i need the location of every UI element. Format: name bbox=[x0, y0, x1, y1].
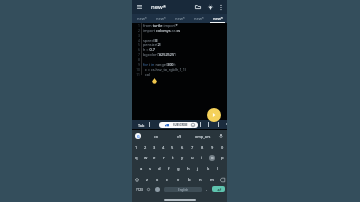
staticText: o bbox=[211, 155, 214, 161]
button[interactable]: 4 bbox=[159, 142, 168, 153]
button[interactable]: k bbox=[203, 163, 213, 174]
button[interactable]: f bbox=[164, 163, 173, 174]
button[interactable]: z bbox=[142, 174, 152, 185]
button[interactable]: 1 bbox=[132, 142, 141, 153]
staticText: new* bbox=[137, 16, 147, 21]
staticText: y bbox=[181, 155, 184, 161]
staticText: 0 bbox=[221, 145, 224, 150]
button[interactable]: 5 bbox=[168, 142, 177, 153]
staticText: SUBSCRIBE bbox=[173, 123, 188, 127]
button[interactable]: English bbox=[164, 187, 202, 192]
staticText: 4 bbox=[162, 145, 165, 150]
staticText: new* bbox=[194, 16, 204, 21]
staticText: Tab bbox=[138, 123, 145, 128]
staticText: 5 bbox=[131, 42, 140, 46]
staticText: b bbox=[188, 177, 191, 183]
button[interactable]: 6 bbox=[177, 142, 187, 153]
button[interactable]: Navigation menu bbox=[133, 0, 145, 14]
button[interactable]: Backspace bbox=[217, 174, 227, 185]
button[interactable]: s bbox=[146, 163, 155, 174]
button[interactable]: 2 bbox=[141, 142, 150, 153]
staticText: w bbox=[144, 155, 148, 161]
button[interactable]: v bbox=[173, 174, 184, 185]
button[interactable]: Open file bbox=[192, 0, 204, 14]
button[interactable]: l bbox=[213, 163, 223, 174]
staticText: i bbox=[201, 155, 203, 161]
button[interactable]: i bbox=[197, 152, 207, 163]
staticText: 3 bbox=[131, 33, 140, 37]
staticText: 1 bbox=[131, 23, 140, 27]
button[interactable]: 3 bbox=[150, 142, 159, 153]
staticText: m bbox=[210, 177, 214, 183]
button[interactable]: n bbox=[195, 174, 206, 185]
button[interactable]: Enter bbox=[212, 186, 225, 192]
button[interactable]: r bbox=[159, 152, 168, 163]
button[interactable]: Emoji bbox=[146, 187, 151, 192]
staticText: G bbox=[137, 134, 140, 139]
staticText: for i in range(300): bbox=[143, 62, 176, 67]
button[interactable]: t bbox=[168, 152, 177, 163]
button[interactable]: 8 bbox=[197, 142, 207, 153]
staticText: ?123 bbox=[136, 188, 143, 192]
button[interactable]: new* bbox=[132, 14, 151, 23]
button[interactable]: g bbox=[173, 163, 183, 174]
button[interactable]: 9 bbox=[207, 142, 217, 153]
button[interactable]: ?123 bbox=[133, 185, 145, 194]
staticText: from turtle import* bbox=[143, 23, 178, 28]
staticText: a bbox=[140, 166, 143, 172]
button[interactable]: Shift bbox=[132, 174, 142, 185]
staticText: h bbox=[187, 166, 190, 172]
button[interactable]: SUBSCRIBE bbox=[159, 122, 198, 128]
button[interactable]: o bbox=[207, 152, 217, 163]
staticText: 8 bbox=[131, 57, 140, 61]
button[interactable]: w bbox=[141, 152, 150, 163]
button[interactable]: h bbox=[183, 163, 193, 174]
button[interactable]: 0 bbox=[217, 142, 227, 153]
staticText: n bbox=[199, 177, 202, 183]
staticText: 6 bbox=[131, 47, 140, 51]
staticText: new* bbox=[156, 16, 166, 21]
staticText: z bbox=[146, 177, 148, 183]
button[interactable]: q bbox=[132, 152, 141, 163]
staticText: e bbox=[153, 155, 156, 161]
button[interactable]: e bbox=[150, 152, 159, 163]
staticText: bgcolor('#252525') bbox=[143, 52, 177, 57]
staticText: omp_ars bbox=[195, 134, 211, 139]
button[interactable]: m bbox=[206, 174, 217, 185]
staticText: 7 bbox=[191, 145, 194, 150]
button[interactable]: new* bbox=[208, 14, 227, 23]
staticText: 6 bbox=[181, 145, 184, 150]
button[interactable]: Sticker bbox=[155, 187, 160, 192]
button[interactable]: u bbox=[187, 152, 197, 163]
staticText: pensize(2) bbox=[143, 42, 161, 47]
staticText: g bbox=[177, 166, 180, 172]
button[interactable]: new* bbox=[151, 14, 170, 23]
button[interactable]: More options bbox=[216, 0, 226, 14]
button[interactable]: Run bbox=[207, 108, 221, 122]
button[interactable]: c bbox=[162, 174, 173, 185]
button[interactable]: x bbox=[152, 174, 162, 185]
staticText: k bbox=[207, 166, 210, 172]
staticText: English bbox=[178, 188, 189, 192]
staticText: new* bbox=[175, 16, 185, 21]
button[interactable]: new* bbox=[170, 14, 189, 23]
button[interactable]: d bbox=[155, 163, 164, 174]
button[interactable]: Tips bbox=[204, 0, 216, 14]
button[interactable]: y bbox=[177, 152, 187, 163]
button[interactable]: new* bbox=[189, 14, 208, 23]
staticText: c bbox=[166, 177, 169, 183]
button[interactable]: a bbox=[137, 163, 146, 174]
button[interactable]: p bbox=[217, 152, 227, 163]
button[interactable]: Voice input bbox=[218, 133, 224, 139]
staticText: q bbox=[135, 155, 138, 161]
button[interactable]: Google bbox=[135, 133, 141, 139]
staticText: 2 bbox=[131, 28, 140, 32]
button[interactable]: 7 bbox=[187, 142, 197, 153]
button[interactable]: j bbox=[193, 163, 203, 174]
staticText: 3 bbox=[153, 145, 156, 150]
staticText: new* bbox=[151, 3, 166, 11]
button[interactable]: b bbox=[184, 174, 195, 185]
staticText: p bbox=[221, 155, 224, 161]
staticText: 5 bbox=[171, 145, 174, 150]
staticText: v9 bbox=[177, 134, 182, 139]
